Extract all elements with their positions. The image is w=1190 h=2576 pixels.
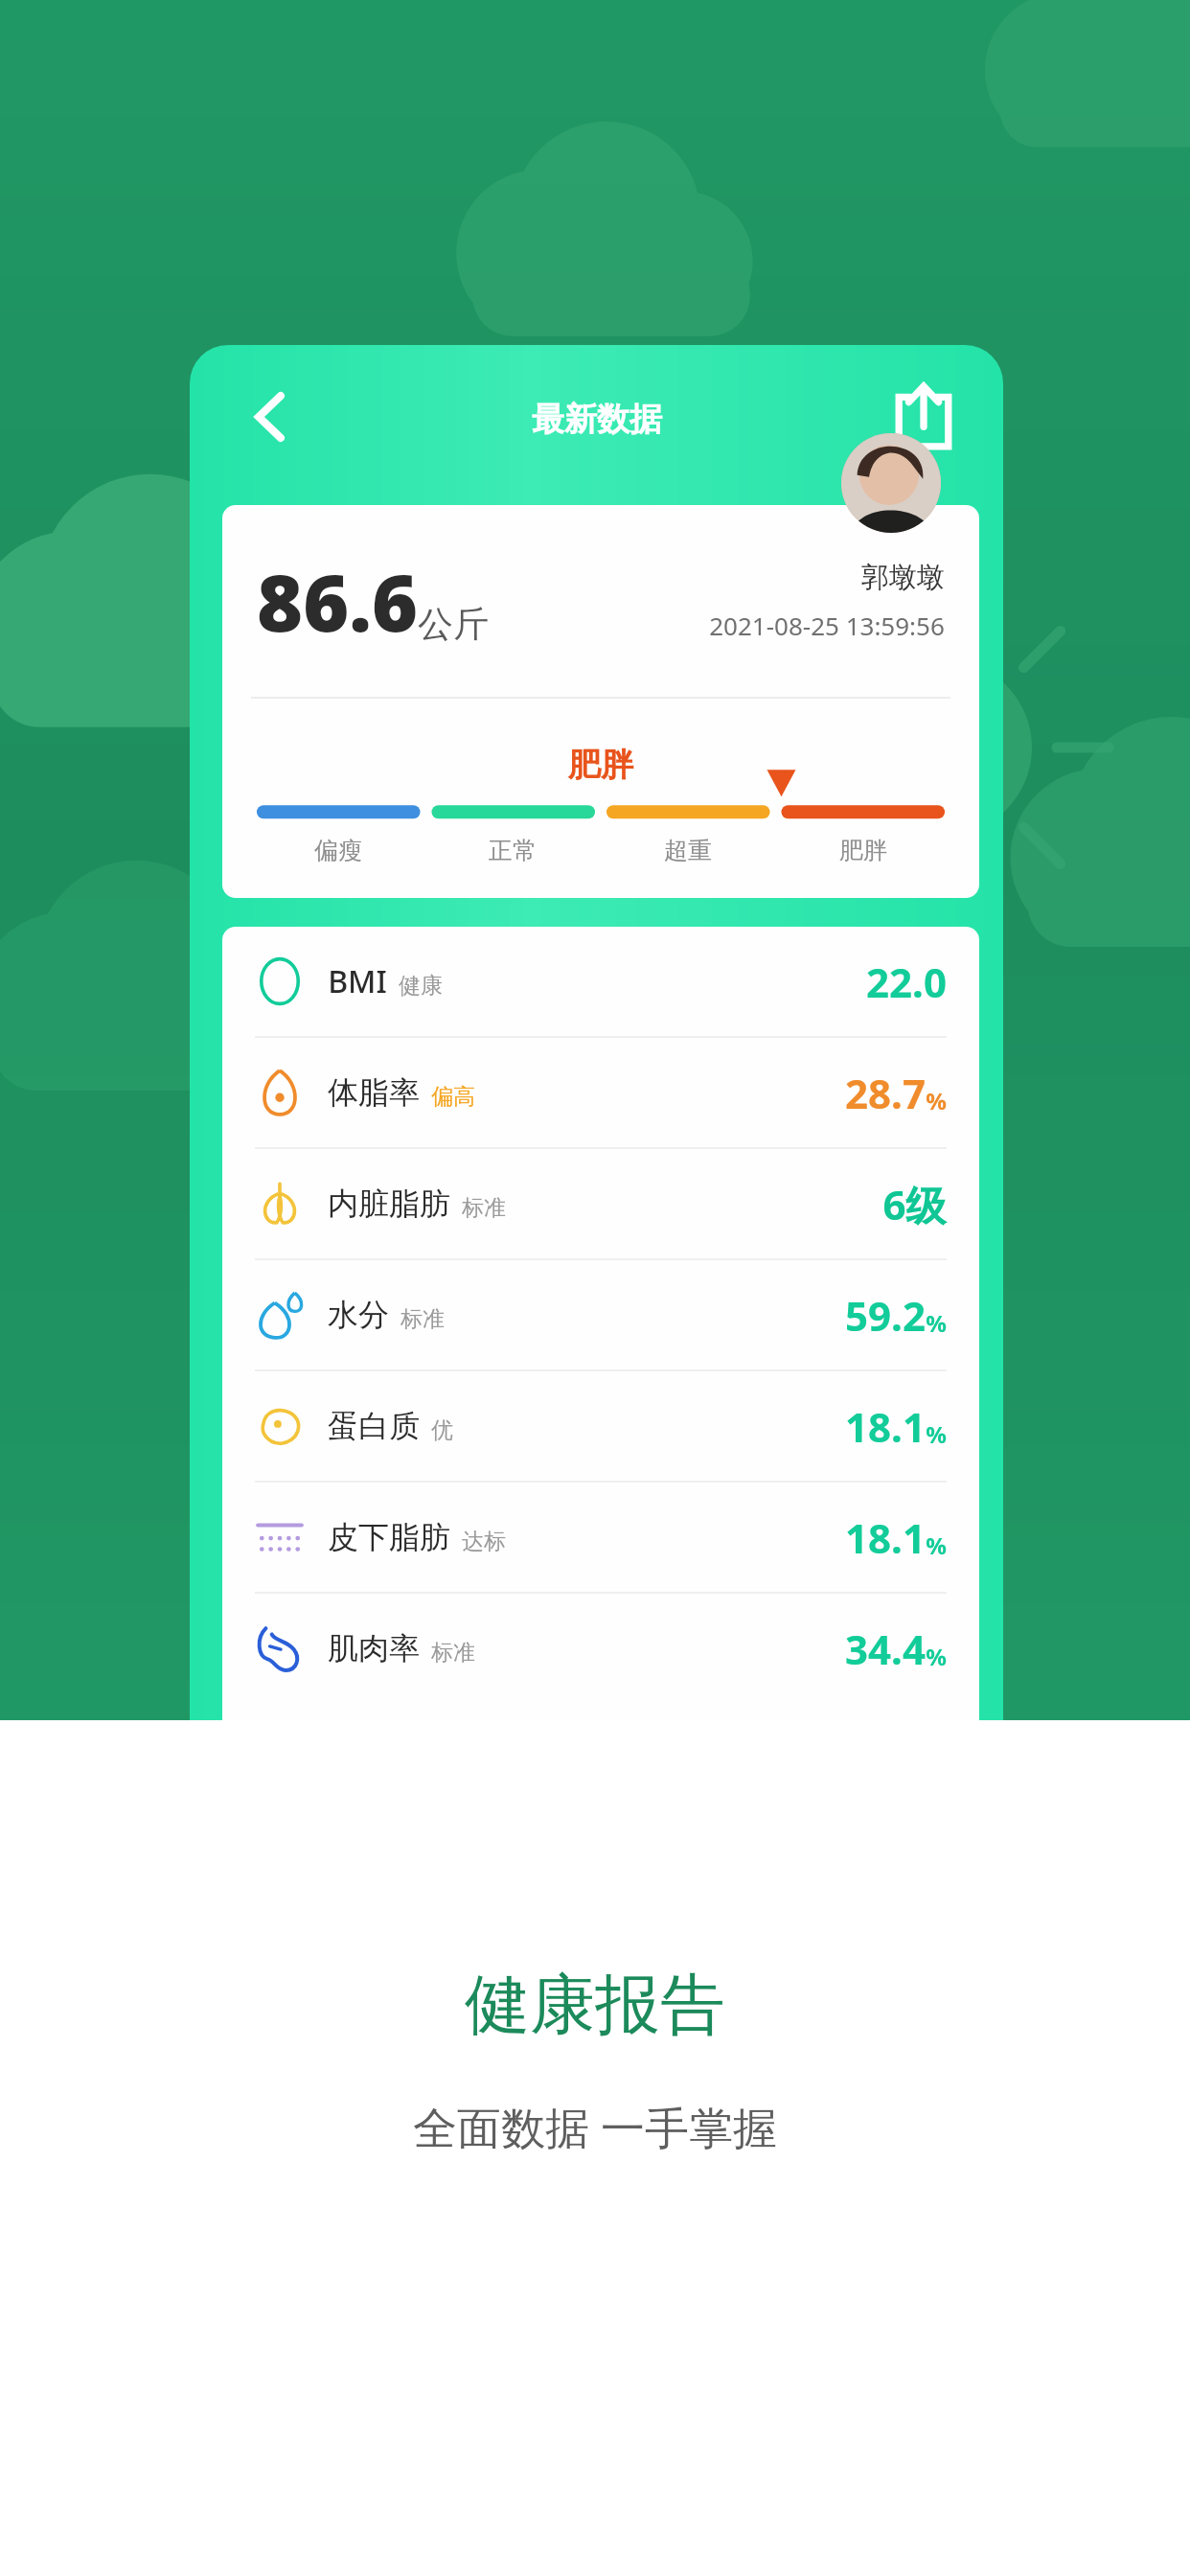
staticText: 最新数据 [532,399,662,440]
staticText: 肥胖 [839,836,887,865]
staticText: 内脏脂肪 [328,1184,450,1223]
staticText: 标准 [462,1194,506,1222]
staticText: 体脂率 [328,1073,420,1112]
staticText: 标准 [431,1639,475,1667]
staticText: 优 [431,1416,453,1444]
staticText: BMI [328,960,387,1002]
button[interactable]: 内脏脂肪 [255,1149,947,1260]
staticText: 全面数据 一手掌握 [413,2097,777,2157]
button[interactable]: 体脂率 [255,1038,947,1149]
button[interactable]: 水分 [255,1260,947,1371]
staticText: 正常 [489,836,537,865]
staticText: 蛋白质 [328,1407,420,1445]
staticText: % [926,1529,947,1561]
staticText: 达标 [462,1528,506,1555]
staticText: 86.6 [257,547,418,655]
staticText: 22.0 [866,954,947,1009]
staticText: 肌肉率 [328,1629,420,1667]
button[interactable]: 蛋白质 [255,1371,947,1483]
staticText: 健康 [399,972,443,1000]
staticText: 18.1 [845,1399,926,1454]
button[interactable]: Back [226,374,312,460]
staticText: 公斤 [418,602,489,647]
button[interactable]: BMI [255,927,947,1038]
staticText: 皮下脂肪 [328,1518,450,1556]
staticText: % [926,1085,947,1116]
staticText: 2021-08-25 13:59:56 [709,609,945,642]
staticText: 28.7 [845,1066,926,1120]
staticText: 肥胖 [568,745,633,786]
staticText: % [926,1307,947,1339]
staticText: % [926,1641,947,1672]
button[interactable]: Share [882,376,965,458]
button[interactable]: 肌肉率 [255,1594,947,1703]
staticText: 偏高 [431,1083,475,1111]
staticText: % [926,1418,947,1450]
staticText: 34.4 [845,1621,926,1676]
staticText: 18.1 [845,1510,926,1565]
staticText: 郭墩墩 [861,560,945,595]
staticText: 6级 [882,1177,947,1231]
staticText: 健康报告 [465,1965,725,2047]
staticText: 水分 [328,1296,389,1334]
staticText: 偏瘦 [314,836,362,865]
staticText: 标准 [400,1305,445,1333]
button[interactable]: 皮下脂肪 [255,1483,947,1594]
staticText: 超重 [664,836,712,865]
staticText: 59.2 [845,1288,926,1343]
